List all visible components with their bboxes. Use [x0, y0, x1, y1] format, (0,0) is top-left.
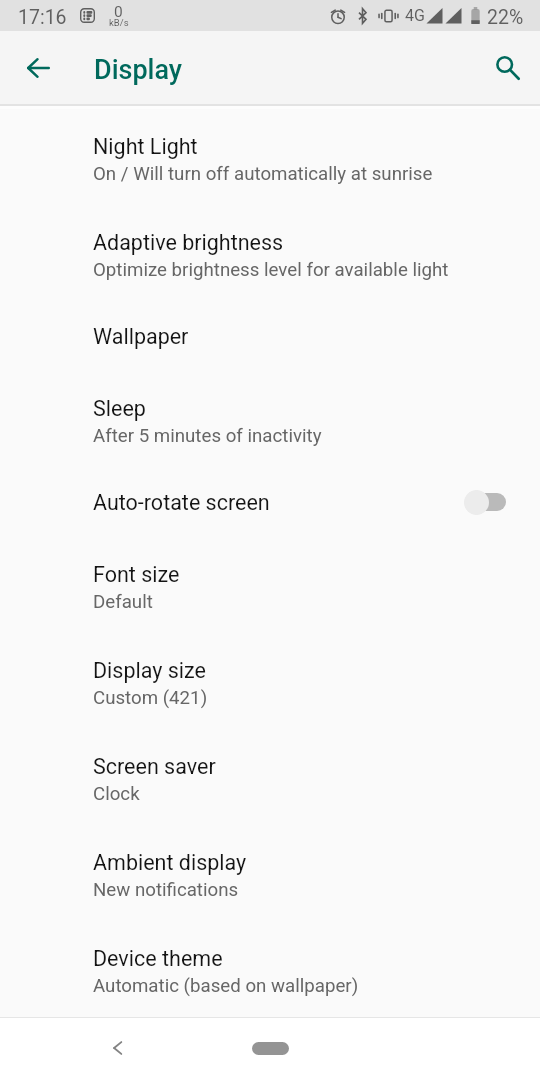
button[interactable]: Font size: [0, 537, 540, 633]
staticText: 0: [114, 3, 123, 21]
button[interactable]: Display size: [0, 633, 540, 729]
staticText: 4G: [405, 6, 425, 25]
staticText: Adaptive brightness: [93, 230, 284, 255]
staticText: After 5 minutes of inactivity: [93, 425, 322, 447]
button[interactable]: Night Light: [0, 109, 540, 205]
button[interactable]: Navigate up: [14, 44, 62, 92]
staticText: Clock: [93, 783, 140, 805]
button[interactable]: Back: [93, 1024, 141, 1072]
staticText: Font size: [93, 562, 180, 587]
button[interactable]: Device theme: [0, 921, 540, 1017]
staticText: On / Will turn off automatically at sunr…: [93, 163, 433, 185]
staticText: Wallpaper: [93, 324, 189, 349]
staticText: Default: [93, 591, 153, 613]
staticText: Automatic (based on wallpaper): [93, 975, 359, 997]
button[interactable]: Ambient display: [0, 825, 540, 921]
button[interactable]: Auto-rotate screen toggle: [442, 471, 540, 533]
button[interactable]: Adaptive brightness: [0, 205, 540, 301]
button[interactable]: Home: [252, 1042, 289, 1055]
staticText: Display: [94, 54, 183, 86]
button[interactable]: Auto-rotate screen: [0, 467, 540, 537]
staticText: Auto-rotate screen: [93, 490, 270, 515]
staticText: Display size: [93, 658, 207, 683]
button[interactable]: Search: [484, 44, 532, 92]
staticText: Device theme: [93, 946, 223, 971]
staticText: Night Light: [93, 134, 198, 159]
button[interactable]: Screen saver: [0, 729, 540, 825]
staticText: 22%: [487, 6, 524, 29]
staticText: Optimize brightness level for available …: [93, 259, 449, 281]
staticText: Ambient display: [93, 850, 247, 875]
staticText: Sleep: [93, 396, 146, 421]
staticText: New notifications: [93, 879, 239, 901]
staticText: kB/s: [109, 17, 129, 28]
button[interactable]: Wallpaper: [0, 301, 540, 371]
staticText: Custom (421): [93, 687, 208, 709]
button[interactable]: Sleep: [0, 371, 540, 467]
staticText: Screen saver: [93, 754, 216, 779]
staticText: 17:16: [18, 6, 67, 29]
